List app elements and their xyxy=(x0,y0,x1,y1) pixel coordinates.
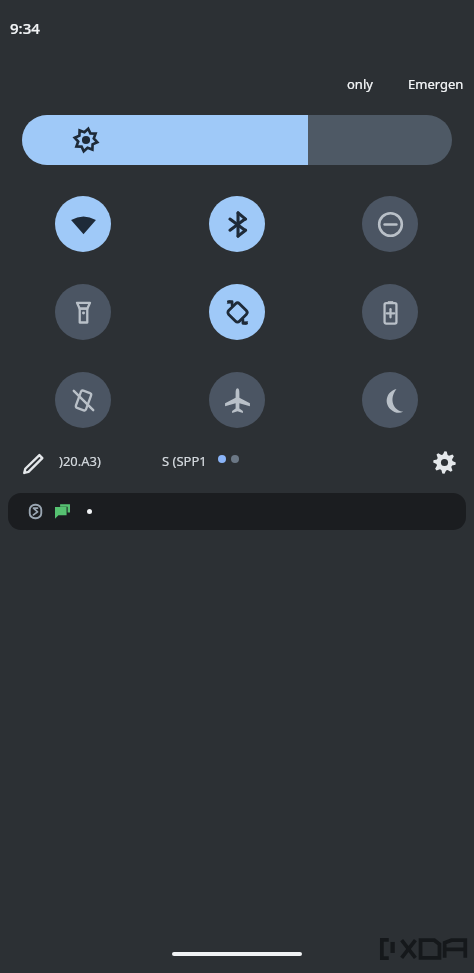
button[interactable]: Screen rotation locked xyxy=(55,372,111,428)
button[interactable]: Night Light xyxy=(362,372,418,428)
staticText: )20.A3) xyxy=(59,452,101,470)
button[interactable]: Battery Saver xyxy=(362,284,418,340)
button[interactable]: Bluetooth xyxy=(209,196,265,252)
staticText: only xyxy=(347,75,373,93)
button[interactable]: Do Not Disturb xyxy=(362,196,418,252)
button[interactable]: Settings xyxy=(424,442,464,482)
button[interactable]: Flashlight xyxy=(55,284,111,340)
button[interactable]: Wi-Fi xyxy=(55,196,111,252)
staticText: Emergen xyxy=(408,75,464,93)
staticText: S (SPP1 xyxy=(162,452,207,470)
button[interactable]: Brightness xyxy=(22,115,452,165)
button[interactable]: Airplane mode xyxy=(209,372,265,428)
button[interactable]: Edit tiles xyxy=(14,444,52,482)
staticText: 9:34 xyxy=(10,18,40,38)
button[interactable] xyxy=(8,493,466,530)
button[interactable]: Auto rotate xyxy=(209,284,265,340)
